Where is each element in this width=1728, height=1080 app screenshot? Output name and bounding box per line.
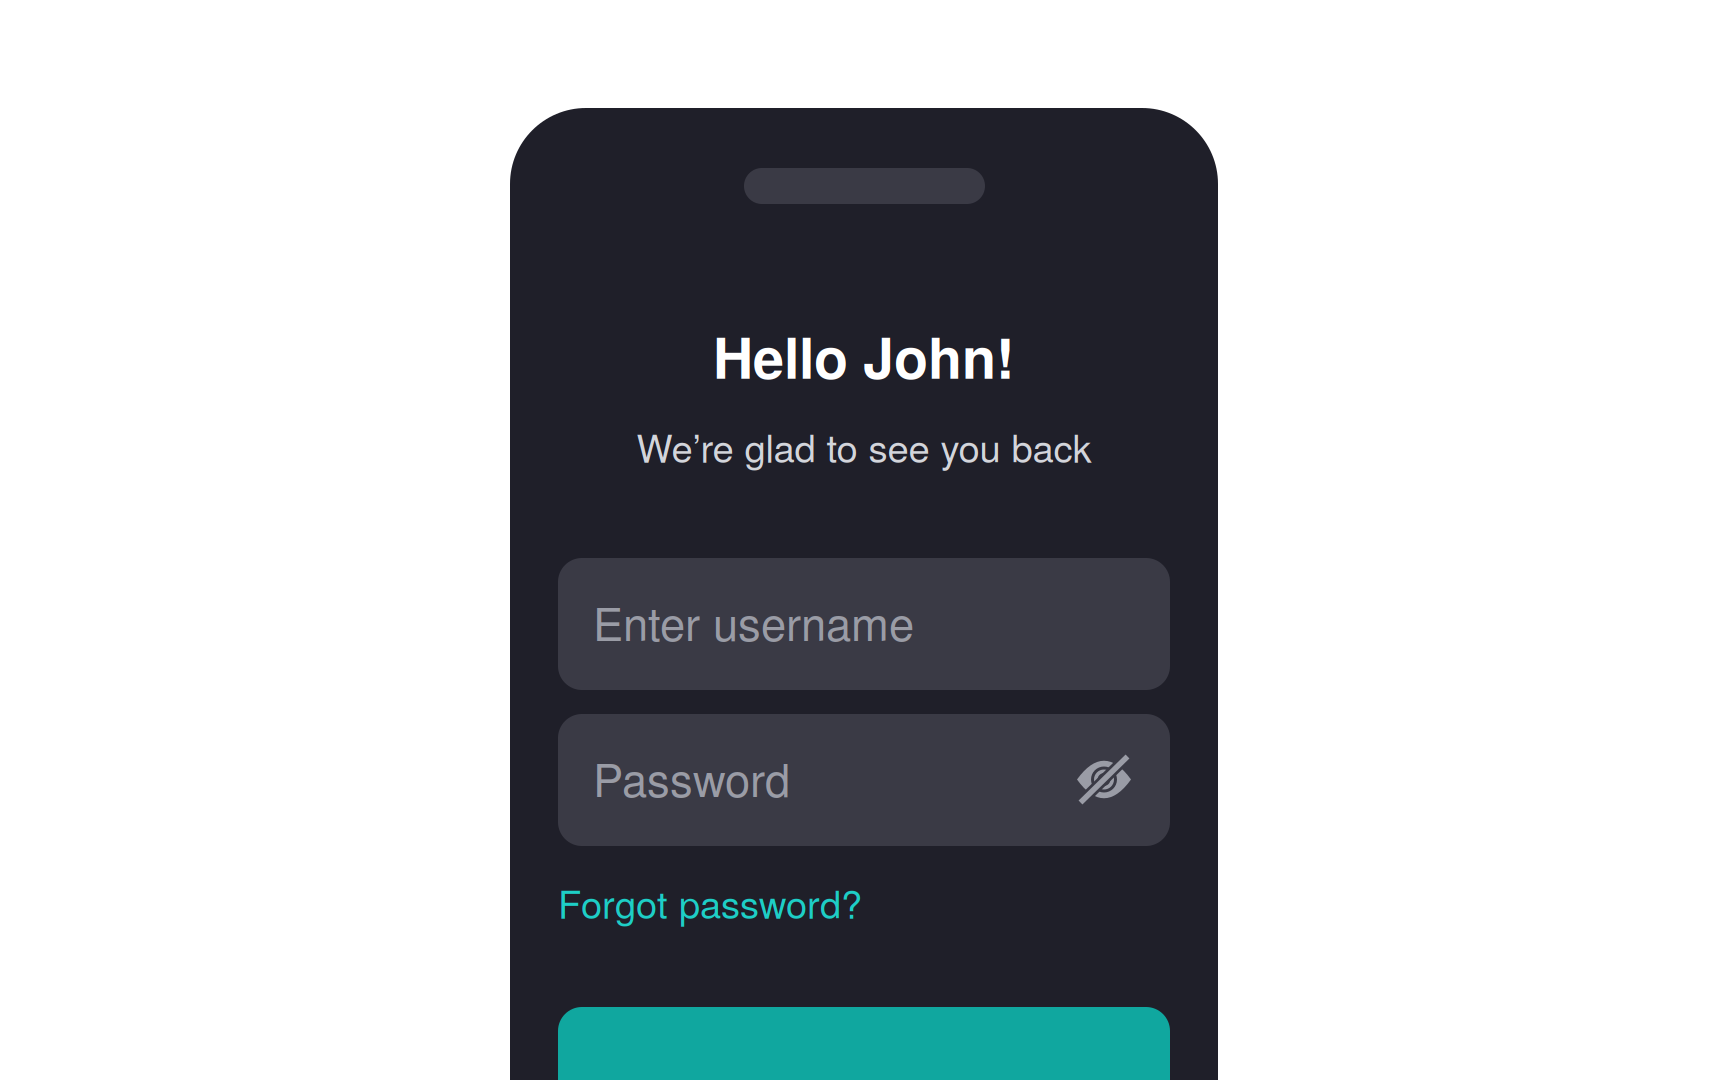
button[interactable]: Password	[558, 714, 1170, 846]
staticText: Enter username	[593, 589, 914, 654]
staticText: Hello John!	[713, 316, 1015, 396]
button[interactable]: Enter username	[558, 558, 1170, 690]
button[interactable]: Log in	[558, 1007, 1170, 1080]
staticText: We’re glad to see you back	[636, 419, 1091, 474]
staticText: Forgot password?	[558, 875, 862, 930]
button[interactable]: Show password	[1077, 757, 1131, 802]
button[interactable]: Forgot password?	[558, 875, 862, 930]
staticText: Password	[593, 745, 790, 810]
